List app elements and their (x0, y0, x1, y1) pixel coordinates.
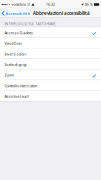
staticText: 16:32 (46, 2, 55, 7)
staticText: VoiceOver (4, 41, 22, 46)
staticText: vodafone IT (11, 2, 30, 7)
button[interactable]: Scala di grigi (0, 59, 101, 69)
button[interactable]: Inverti colori (0, 48, 101, 59)
button[interactable]: AssistiveTouch (0, 91, 101, 101)
staticText: IN TRIPLO CLIC SUL TASTO HOME: (4, 22, 56, 26)
staticText: Accessibilità (6, 10, 30, 16)
button[interactable]: Zoom (0, 70, 101, 80)
staticText: Accesso Guidato (4, 30, 32, 35)
staticText: 86 % (85, 2, 93, 7)
staticText: Scala di grigi (4, 62, 26, 67)
staticText: Zoom (4, 73, 13, 78)
staticText: Inverti colori (4, 51, 26, 56)
button[interactable]: VoiceOver (0, 38, 101, 48)
button[interactable]: Controllo interruttori (0, 80, 101, 90)
button[interactable]: Accessibilità (0, 9, 31, 18)
button[interactable]: Accesso Guidato (0, 27, 101, 37)
staticText: Controllo interruttori (4, 83, 38, 88)
staticText: AssistiveTouch (4, 94, 29, 99)
staticText: Abbreviazioni accessibilità (33, 10, 90, 16)
